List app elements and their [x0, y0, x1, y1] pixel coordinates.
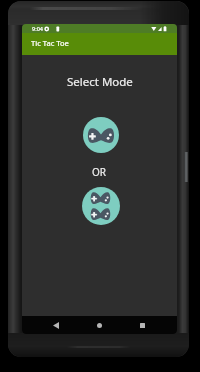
- staticText: OR: [92, 165, 107, 179]
- button[interactable]: Two player mode: [82, 187, 120, 225]
- button[interactable]: Home: [91, 317, 107, 333]
- button[interactable]: Back: [48, 317, 64, 333]
- staticText: Tic Tac Toe: [31, 38, 69, 48]
- staticText: Select Mode: [67, 74, 133, 90]
- button[interactable]: Recent apps: [134, 317, 150, 333]
- button[interactable]: Single player mode: [83, 117, 119, 153]
- staticText: 9:04: [32, 25, 43, 32]
